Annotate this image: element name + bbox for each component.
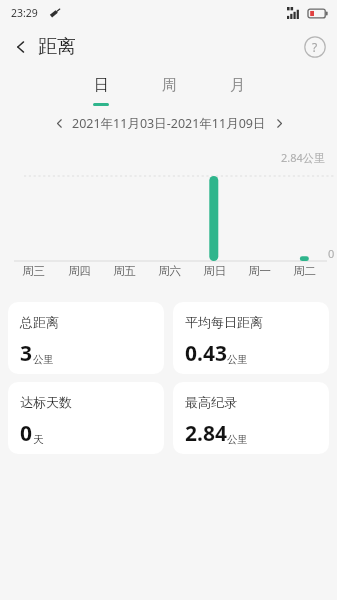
button[interactable]: Previous week [49, 113, 69, 133]
staticText: 公里 [227, 353, 248, 366]
staticText: 周 [162, 76, 177, 95]
button[interactable]: Next week [269, 113, 289, 133]
staticText: 日 [94, 76, 109, 95]
staticText: 3 [20, 339, 33, 368]
staticText: 周六 [158, 264, 181, 278]
staticText: 周二 [293, 264, 316, 278]
staticText: 公里 [33, 353, 54, 366]
staticText: 平均每日距离 [185, 314, 263, 330]
staticText: 达标天数 [20, 394, 72, 410]
staticText: 最高纪录 [185, 394, 237, 410]
staticText: 周五 [113, 264, 136, 278]
staticText: 周一 [248, 264, 271, 278]
staticText: 2.84 [185, 419, 227, 448]
button[interactable]: 总距离 [8, 302, 164, 374]
staticText: 周日 [203, 264, 226, 278]
button[interactable]: 日 [67, 68, 135, 110]
button[interactable]: 平均每日距离 [173, 302, 329, 374]
staticText: 0 [328, 246, 335, 261]
button[interactable]: 月 [203, 68, 271, 110]
button[interactable]: 周 [135, 68, 203, 110]
staticText: 0.43 [185, 339, 227, 368]
button[interactable]: Help [301, 33, 329, 61]
staticText: ? [312, 39, 318, 55]
staticText: 总距离 [20, 314, 59, 330]
staticText: 天 [33, 433, 44, 446]
staticText: 2021年11月03日-2021年11月09日 [72, 115, 266, 132]
staticText: 2.84公里 [281, 150, 325, 165]
button[interactable]: 达标天数 [8, 382, 164, 454]
staticText: 周四 [68, 264, 91, 278]
staticText: 周三 [22, 264, 45, 278]
button[interactable]: 最高纪录 [173, 382, 329, 454]
staticText: 0 [20, 419, 33, 448]
staticText: 23:29 [11, 6, 38, 20]
button[interactable]: Back [4, 30, 38, 64]
staticText: 距离 [38, 35, 76, 59]
staticText: 月 [230, 76, 245, 95]
staticText: 公里 [227, 433, 248, 446]
